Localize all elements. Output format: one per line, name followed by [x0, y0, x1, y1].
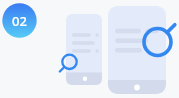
button[interactable]: Search illustration, step 02	[0, 0, 179, 98]
